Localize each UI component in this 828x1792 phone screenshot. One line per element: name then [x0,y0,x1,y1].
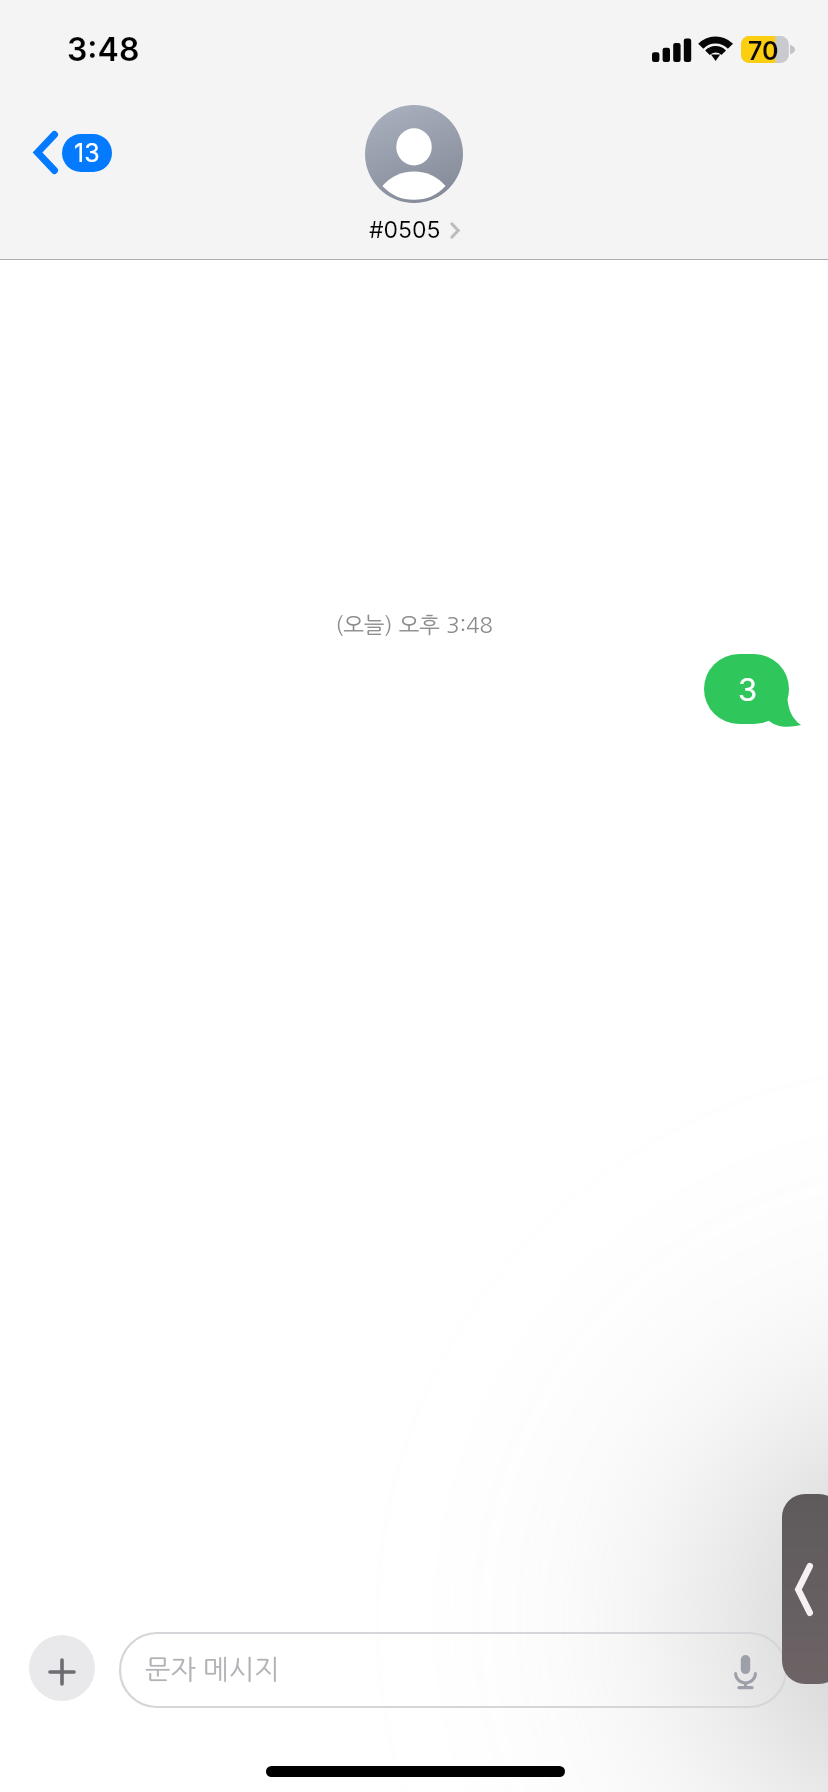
button[interactable]: Add attachment [29,1635,95,1701]
staticText: 문자 메시지 [145,1656,280,1683]
button[interactable]: 3 [704,654,804,728]
staticText: 3:48 [67,30,140,69]
button[interactable]: #0505 [365,105,463,244]
button[interactable]: Back to 13 conversations [25,123,121,182]
staticText: 3 [738,671,758,709]
button[interactable]: 문자 메시지 [120,1633,786,1707]
staticText: #0505 [369,216,441,244]
button[interactable]: Dictate [734,1655,757,1689]
staticText: 13 [74,138,100,168]
staticText: (오늘) 오후 3:48 [0,614,828,636]
button[interactable]: Open side panel [782,1494,828,1684]
staticText: 70 [748,36,779,63]
